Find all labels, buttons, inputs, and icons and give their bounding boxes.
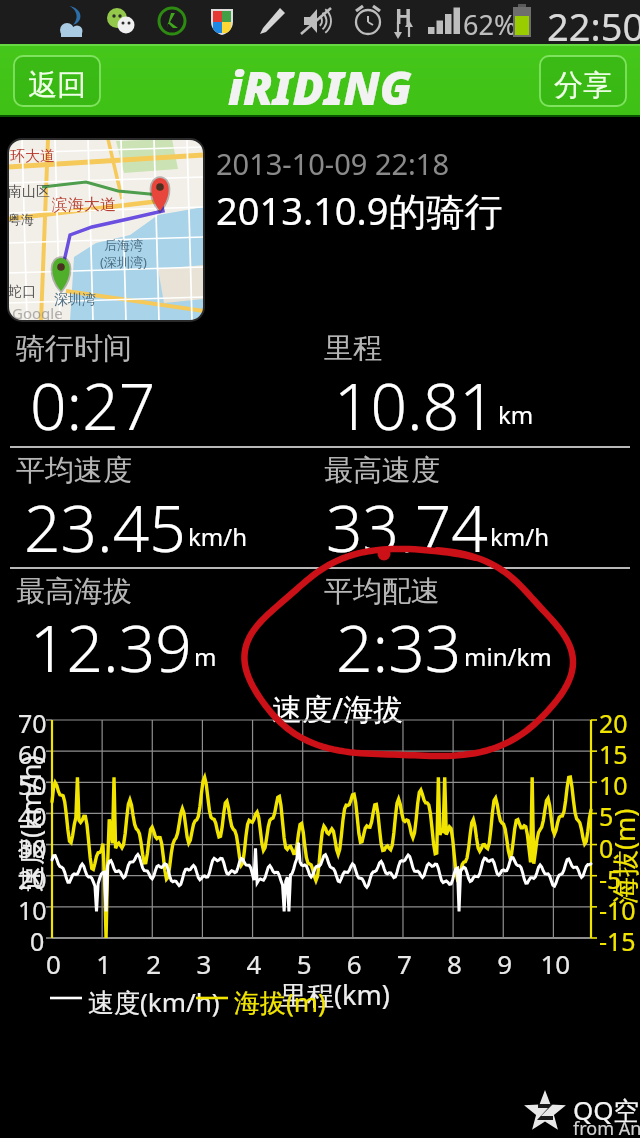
button[interactable]: 返回 xyxy=(14,56,100,106)
button[interactable]: 路线地图 xyxy=(8,139,204,321)
button[interactable]: QQ空间 from Android xyxy=(518,1090,634,1134)
button[interactable]: 分享 xyxy=(540,56,626,106)
button[interactable] xyxy=(270,688,384,724)
